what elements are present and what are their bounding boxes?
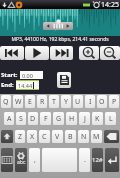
button[interactable]: B xyxy=(65,130,76,143)
staticText: L xyxy=(109,114,113,124)
staticText: . xyxy=(84,155,86,165)
button[interactable]: W xyxy=(13,95,23,108)
staticText: C xyxy=(42,132,47,142)
staticText: abc xyxy=(17,159,26,166)
button[interactable]: Enter xyxy=(105,148,119,172)
button[interactable]: Play xyxy=(25,46,49,60)
button[interactable]: Selection handles xyxy=(43,22,73,30)
button[interactable]: M xyxy=(91,130,102,143)
button[interactable]: E xyxy=(25,95,35,108)
button[interactable]: P xyxy=(109,95,119,108)
button[interactable]: U xyxy=(73,95,83,108)
staticText: Y xyxy=(64,97,68,107)
staticText: E xyxy=(28,97,32,107)
button[interactable]: Input method xyxy=(15,148,27,172)
button[interactable]: Rewind xyxy=(0,46,24,60)
staticText: Start: xyxy=(1,71,18,79)
button[interactable]: Q xyxy=(1,95,11,108)
button[interactable]: G xyxy=(53,112,64,125)
button[interactable]: Backspace xyxy=(104,130,119,143)
staticText: U xyxy=(75,97,81,107)
button[interactable]: Keyboard settings xyxy=(1,148,13,172)
staticText: , xyxy=(34,155,36,165)
button[interactable]: F xyxy=(40,112,51,125)
button[interactable]: T xyxy=(49,95,59,108)
staticText: 12# xyxy=(92,156,103,164)
button[interactable]: J xyxy=(79,112,90,125)
staticText: W xyxy=(15,97,22,107)
button[interactable]: N xyxy=(78,130,89,143)
staticText: Q xyxy=(3,97,9,107)
staticText: B xyxy=(68,132,73,142)
button[interactable]: C xyxy=(39,130,50,143)
button[interactable]: Zoom in xyxy=(79,46,99,60)
staticText: MP3, 44100 Hz, 192 kbps, 214.41 seconds xyxy=(11,36,109,43)
staticText: 14:25 xyxy=(101,0,119,9)
staticText: G xyxy=(56,114,62,124)
button[interactable]: , xyxy=(29,148,40,172)
staticText: T xyxy=(52,97,56,107)
button[interactable] xyxy=(42,148,77,172)
button[interactable]: L xyxy=(105,112,116,125)
button[interactable]: A xyxy=(4,112,14,125)
staticText: End: xyxy=(1,81,14,89)
staticText: V xyxy=(55,132,60,142)
button[interactable]: V xyxy=(52,130,63,143)
staticText: O xyxy=(99,97,105,107)
staticText: D xyxy=(30,114,36,124)
button[interactable]: Fast forward xyxy=(50,46,73,60)
staticText: F xyxy=(44,114,48,124)
button[interactable]: Shift xyxy=(1,130,13,143)
button[interactable]: S xyxy=(16,112,26,125)
staticText: M xyxy=(93,132,100,142)
button[interactable]: Save xyxy=(57,72,71,88)
staticText: X xyxy=(30,132,35,142)
staticText: Z xyxy=(18,132,23,142)
staticText: I xyxy=(89,97,92,107)
staticText: H xyxy=(69,114,75,124)
staticText: S xyxy=(19,114,23,124)
staticText: K xyxy=(95,114,100,124)
button[interactable]: Z xyxy=(15,130,25,143)
staticText: 0.00 xyxy=(22,72,33,79)
button[interactable]: X xyxy=(27,130,37,143)
staticText: J xyxy=(84,114,86,124)
button[interactable]: R xyxy=(37,95,47,108)
button[interactable]: H xyxy=(66,112,77,125)
button[interactable]: 0.00 xyxy=(20,71,43,79)
staticText: P xyxy=(112,97,117,107)
button[interactable]: 14.44 xyxy=(16,81,39,89)
staticText: A xyxy=(7,114,12,124)
staticText: R xyxy=(40,97,45,107)
staticText: 14.44 xyxy=(18,82,33,89)
button[interactable]: I xyxy=(85,95,95,108)
button[interactable]: O xyxy=(97,95,107,108)
staticText: N xyxy=(81,132,87,142)
button[interactable]: D xyxy=(28,112,38,125)
button[interactable]: Zoom out xyxy=(100,46,120,60)
button[interactable]: K xyxy=(92,112,103,125)
button[interactable]: . xyxy=(79,148,90,172)
button[interactable]: Symbols xyxy=(92,148,103,172)
button[interactable]: Y xyxy=(61,95,71,108)
